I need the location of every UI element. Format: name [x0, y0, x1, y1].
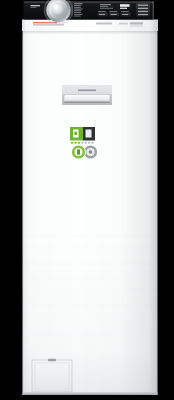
button[interactable]: Washing machine product image: [0, 0, 174, 400]
